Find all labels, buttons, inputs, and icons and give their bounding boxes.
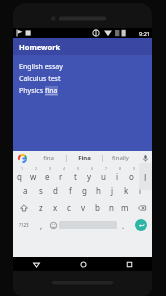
button[interactable]: b <box>90 199 104 216</box>
button[interactable]: Homework <box>13 38 152 55</box>
button[interactable]: 5 <box>68 165 82 182</box>
staticText: d <box>53 185 58 196</box>
button[interactable]: h <box>91 182 105 199</box>
staticText: b <box>95 202 100 213</box>
staticText: v <box>81 202 86 213</box>
button[interactable]: n <box>104 199 118 216</box>
staticText: finally <box>112 154 129 162</box>
staticText: j <box>111 185 114 196</box>
staticText: Fina <box>78 154 91 162</box>
button[interactable]: s <box>33 182 48 199</box>
staticText: 2 <box>35 166 38 171</box>
staticText: 6 <box>91 166 94 171</box>
staticText: Homework <box>19 42 61 52</box>
staticText: n <box>109 202 114 213</box>
staticText: e <box>45 171 50 182</box>
button[interactable]: fina <box>31 151 66 165</box>
staticText: ?123 <box>19 222 29 228</box>
button[interactable]: 8 <box>110 165 124 182</box>
button[interactable]: x <box>48 199 62 216</box>
staticText: 9 <box>133 166 136 171</box>
staticText: p <box>143 171 148 182</box>
button[interactable]: Home <box>60 257 106 271</box>
staticText: 3 <box>49 166 52 171</box>
button[interactable]: k <box>119 182 133 199</box>
button[interactable]: c <box>62 199 76 216</box>
button[interactable]: m <box>118 199 132 216</box>
button[interactable]: 4 <box>54 165 68 182</box>
staticText: m <box>121 202 129 213</box>
staticText: English essay <box>19 62 63 72</box>
button[interactable]: Enter <box>129 216 152 234</box>
button[interactable]: g <box>77 182 91 199</box>
button[interactable]: Voice input <box>138 151 152 165</box>
staticText: r <box>59 171 63 182</box>
button[interactable]: . <box>117 216 129 234</box>
staticText: 4 <box>63 166 66 171</box>
staticText: y <box>87 171 92 182</box>
button[interactable]: Shift <box>13 199 34 216</box>
staticText: t <box>74 171 77 182</box>
button[interactable]: Back <box>13 257 60 271</box>
button[interactable]: 0 <box>138 165 152 182</box>
staticText: 7 <box>105 166 108 171</box>
staticText: 8 <box>119 166 122 171</box>
staticText: l <box>144 171 147 183</box>
staticText: h <box>96 185 101 196</box>
staticText: f <box>69 185 72 196</box>
staticText: 9:21 <box>139 30 150 37</box>
button[interactable]: a <box>18 182 33 199</box>
button[interactable]: l <box>133 182 147 199</box>
staticText: q <box>17 171 22 182</box>
button[interactable]: v <box>76 199 90 216</box>
button[interactable]: Emoji <box>47 216 59 234</box>
staticText: u <box>101 171 106 182</box>
staticText: w <box>30 171 37 182</box>
staticText: fina <box>43 154 54 162</box>
staticText: c <box>67 202 71 213</box>
staticText: 1 <box>21 166 24 171</box>
staticText: o <box>129 171 134 182</box>
staticText: Physics <box>19 86 45 96</box>
staticText: fina <box>45 86 58 96</box>
button[interactable]: z <box>34 199 48 216</box>
staticText: i <box>116 171 119 182</box>
button[interactable]: 2 <box>26 165 40 182</box>
button[interactable]: Backspace <box>132 199 152 216</box>
staticText: k <box>124 185 129 196</box>
staticText: z <box>39 202 43 213</box>
staticText: . <box>122 220 125 231</box>
staticText: , <box>40 220 43 231</box>
staticText: l <box>139 185 142 196</box>
button[interactable]: Fina <box>67 151 102 165</box>
staticText: Calculus test <box>19 74 61 84</box>
button[interactable]: 3 <box>40 165 54 182</box>
button[interactable]: Recents <box>106 257 152 271</box>
staticText: 5 <box>77 166 80 171</box>
button[interactable]: 7 <box>96 165 110 182</box>
button[interactable]: Google <box>13 151 31 165</box>
button[interactable]: ?123 <box>13 216 35 234</box>
staticText: a <box>23 185 28 196</box>
button[interactable]: , <box>35 216 47 234</box>
button[interactable]: d <box>48 182 63 199</box>
button[interactable]: finally <box>103 151 138 165</box>
button[interactable]: 6 <box>82 165 96 182</box>
button[interactable]: English essay <box>13 55 152 151</box>
button[interactable]: j <box>105 182 119 199</box>
button[interactable]: f <box>63 182 77 199</box>
button[interactable]: 1 <box>13 165 26 182</box>
staticText: g <box>82 185 87 196</box>
staticText: x <box>53 202 58 213</box>
button[interactable]: 9 <box>124 165 138 182</box>
staticText: s <box>39 185 43 196</box>
